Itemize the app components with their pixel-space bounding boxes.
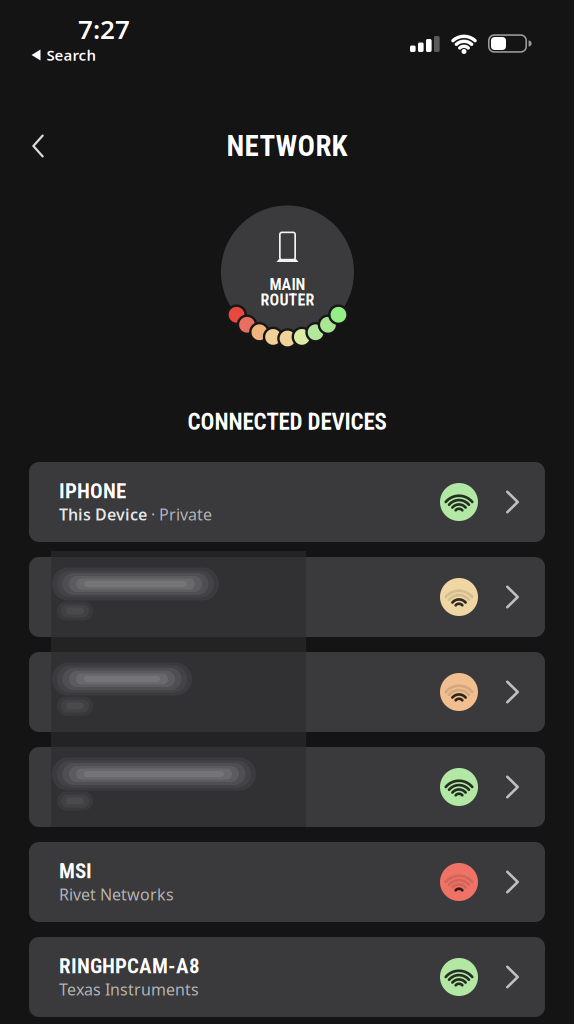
- button[interactable]: RINGHPCAM-A8: [29, 937, 545, 1017]
- staticText: RINGHPCAM-A8: [59, 954, 200, 978]
- staticText: MSI: [59, 859, 92, 883]
- button[interactable]: MSI: [29, 842, 545, 922]
- button[interactable]: Device details: [29, 747, 545, 827]
- staticText: IPHONE: [59, 479, 126, 503]
- staticText: Texas Instruments: [59, 978, 199, 1000]
- staticText: 7:27: [78, 11, 130, 47]
- staticText: Rivet Networks: [59, 883, 174, 905]
- staticText: Search: [46, 45, 96, 65]
- staticText: CONNECTED DEVICES: [187, 408, 386, 435]
- button[interactable]: Main Router: [202, 191, 372, 361]
- staticText: This Device: [59, 503, 147, 525]
- button[interactable]: Device details: [29, 652, 545, 732]
- button[interactable]: Device details: [29, 557, 545, 637]
- button[interactable]: IPHONE: [29, 462, 545, 542]
- staticText: · Private: [147, 503, 212, 525]
- staticText: ROUTER: [260, 291, 314, 309]
- staticText: NETWORK: [226, 129, 347, 163]
- button[interactable]: Search: [16, 44, 112, 66]
- button[interactable]: Back: [23, 131, 53, 161]
- staticText: MAIN: [269, 275, 305, 294]
